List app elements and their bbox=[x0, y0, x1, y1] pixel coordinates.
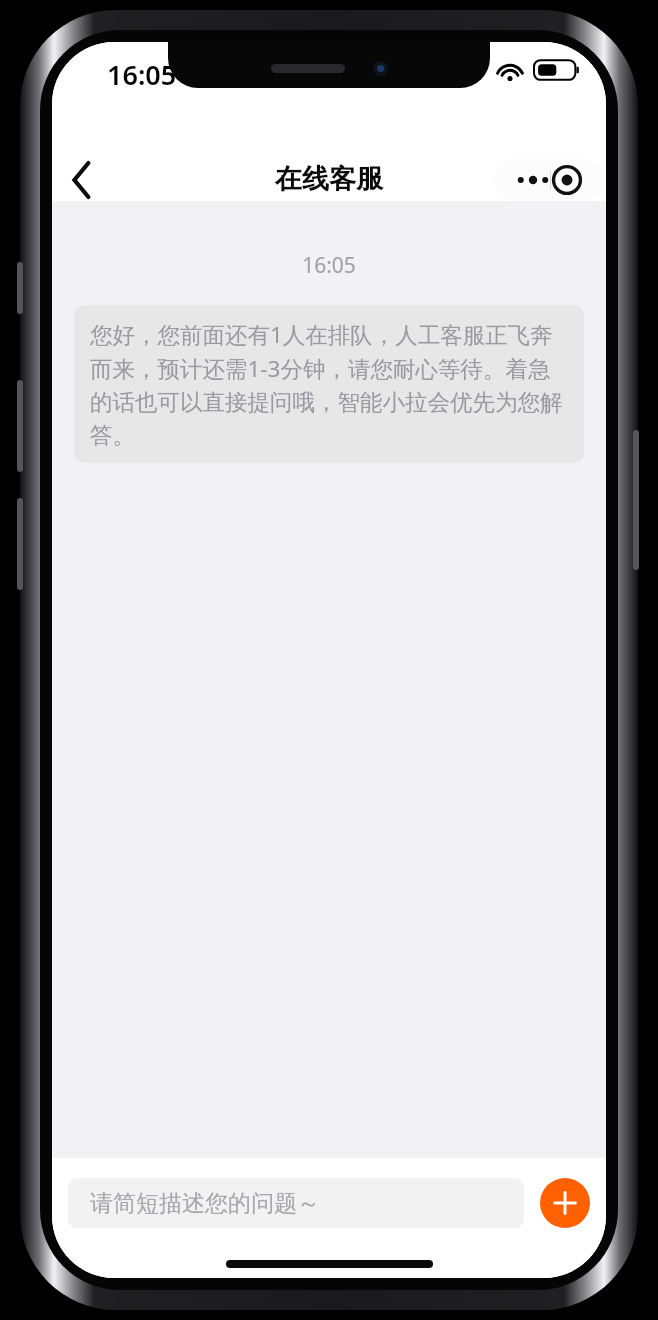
button[interactable]: Back bbox=[54, 159, 110, 201]
staticText: 16:05 bbox=[52, 251, 606, 280]
button[interactable]: 请简短描述您的问题～ bbox=[68, 1178, 524, 1228]
staticText: 在线客服 bbox=[275, 162, 383, 196]
staticText: 您好，您前面还有1人在排队，人工客服正飞奔而来，预计还需1-3分钟，请您耐心等待… bbox=[90, 319, 568, 449]
button[interactable]: 您好，您前面还有1人在排队，人工客服正飞奔而来，预计还需1-3分钟，请您耐心等待… bbox=[74, 305, 584, 463]
button[interactable]: More actions bbox=[540, 1178, 590, 1228]
button[interactable]: Mini program menu bbox=[494, 159, 605, 201]
staticText: 请简短描述您的问题～ bbox=[90, 1189, 320, 1218]
staticText: 16:05 bbox=[107, 56, 177, 93]
